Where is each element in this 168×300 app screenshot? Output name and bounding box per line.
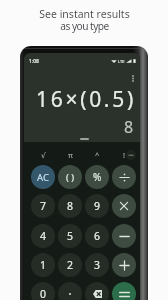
staticText: π (68, 150, 73, 160)
staticText: 5 (67, 229, 74, 243)
staticText: 9 (94, 199, 101, 213)
staticText: ( ) (66, 171, 75, 184)
button[interactable]: 7 (31, 194, 55, 218)
button[interactable]: ! (113, 146, 135, 164)
button[interactable]: Show more functions (123, 147, 139, 163)
button[interactable]: Divide (112, 165, 136, 189)
button[interactable]: Multiply (112, 194, 136, 218)
button[interactable]: 9 (85, 194, 109, 218)
button[interactable]: π (59, 146, 81, 164)
staticText: LTE (118, 59, 125, 64)
button[interactable]: 5 (58, 224, 82, 248)
button[interactable]: Decimal point (58, 282, 82, 300)
staticText: √ (41, 151, 46, 160)
button[interactable]: Delete (85, 282, 109, 300)
button[interactable]: 0 (31, 282, 55, 300)
staticText: 2 (67, 258, 74, 272)
button[interactable]: 6 (85, 224, 109, 248)
staticText: 1:08 (29, 58, 39, 65)
button[interactable]: Subtract (112, 224, 136, 248)
button[interactable]: 8 (58, 194, 82, 218)
staticText: ^ (95, 150, 100, 160)
button[interactable]: 2 (58, 253, 82, 277)
button[interactable]: 4 (31, 224, 55, 248)
staticText: 8 (67, 199, 74, 213)
staticText: ! (123, 150, 126, 160)
button[interactable]: ( ) (58, 165, 82, 189)
staticText: 6 (94, 229, 101, 243)
staticText: % (93, 170, 102, 184)
staticText: AC (37, 171, 49, 184)
button[interactable]: Add (112, 253, 136, 277)
staticText: See instant results (39, 7, 130, 21)
staticText: 4 (40, 229, 47, 243)
button[interactable]: AC (31, 165, 55, 189)
button[interactable]: √ (32, 146, 54, 164)
button[interactable]: 3 (85, 253, 109, 277)
staticText: 0 (40, 287, 47, 300)
button[interactable]: ^ (86, 146, 108, 164)
staticText: 16×(0.5) (36, 85, 136, 114)
button[interactable]: % (85, 165, 109, 189)
button[interactable]: 1 (31, 253, 55, 277)
staticText: 3 (94, 258, 101, 272)
button[interactable]: More options (127, 71, 139, 85)
staticText: 8 (124, 116, 134, 138)
button[interactable]: Equals (112, 282, 136, 300)
staticText: 7 (40, 199, 47, 213)
staticText: as you type (60, 19, 109, 33)
staticText: 1 (40, 258, 47, 272)
